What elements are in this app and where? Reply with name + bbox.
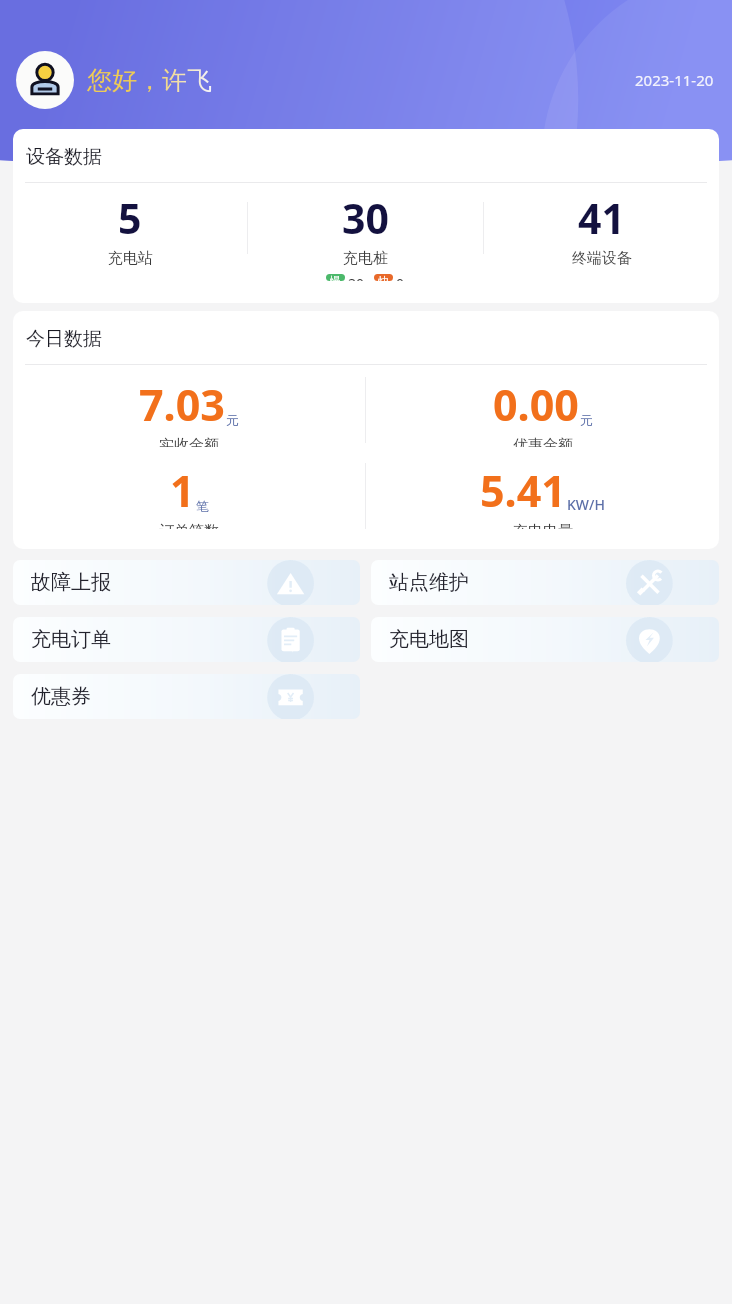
staticText: 实收金额 [159, 436, 219, 447]
staticText: 2023-11-20 [635, 70, 714, 90]
button[interactable]: 7.03 [13, 375, 365, 447]
staticText: 优惠券 [31, 684, 91, 709]
staticText: 优惠金额 [513, 436, 573, 447]
button[interactable]: 41 [484, 190, 719, 268]
staticText: 充电站 [108, 249, 153, 268]
button[interactable]: 0.00 [366, 375, 719, 447]
staticText: 充电地图 [389, 627, 469, 652]
staticText: KW/H [567, 495, 605, 514]
staticText: 故障上报 [31, 570, 111, 595]
button[interactable]: 充电订单 [13, 617, 360, 662]
button[interactable]: 充电地图 [371, 617, 719, 662]
staticText: 订单笔数 [159, 522, 219, 529]
staticText: 充电桩 [343, 249, 388, 268]
staticText: 笔 [196, 498, 209, 514]
button[interactable]: 5.41 [366, 461, 719, 529]
button[interactable]: 故障上报 [13, 560, 360, 605]
staticText: 元 [226, 412, 239, 428]
staticText: 终端设备 [572, 249, 632, 268]
staticText: 30 [348, 274, 365, 281]
button[interactable]: 5 [13, 190, 247, 268]
staticText: 您好，许飞 [87, 65, 212, 96]
button[interactable]: Profile [16, 51, 74, 109]
staticText: 元 [580, 412, 593, 428]
staticText: 5.41 [480, 461, 566, 520]
button[interactable]: 1 [13, 461, 365, 529]
staticText: 7.03 [139, 375, 225, 434]
staticText: 0.00 [493, 375, 579, 434]
staticText: 设备数据 [26, 145, 102, 169]
staticText: 1 [170, 461, 195, 520]
staticText: 充电电量 [513, 522, 573, 529]
staticText: 41 [578, 190, 625, 246]
staticText: 今日数据 [26, 327, 102, 351]
staticText: 慢 [330, 274, 341, 281]
button[interactable]: 30 [248, 190, 483, 281]
staticText: 充电订单 [31, 627, 111, 652]
button[interactable]: 优惠券 [13, 674, 360, 719]
staticText: 站点维护 [389, 570, 469, 595]
button[interactable]: 站点维护 [371, 560, 719, 605]
staticText: 5 [118, 190, 142, 246]
staticText: 0 [396, 274, 405, 281]
staticText: 快 [378, 274, 389, 281]
staticText: 30 [342, 190, 389, 246]
